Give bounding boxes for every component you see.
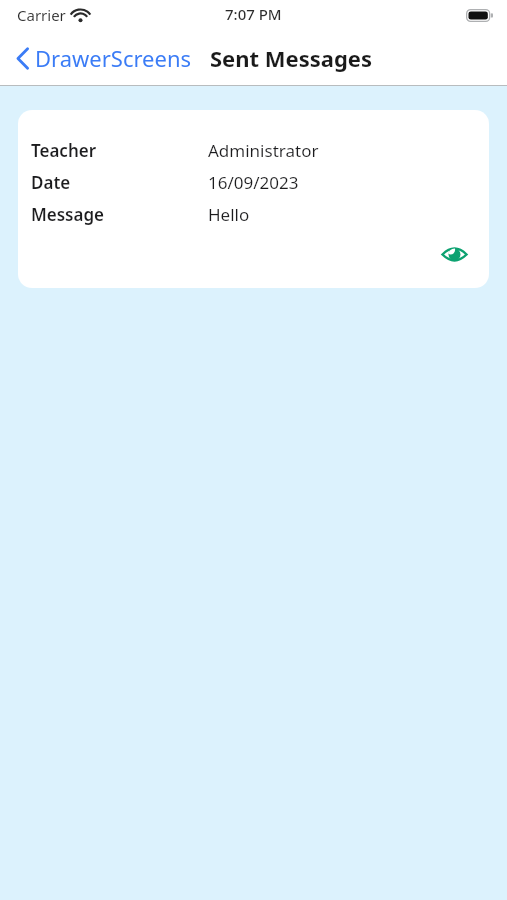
staticText: Carrier	[17, 5, 66, 25]
staticText: Date	[31, 171, 71, 194]
button[interactable]: Teacher	[18, 110, 489, 288]
staticText: 7:07 PM	[225, 4, 282, 24]
staticText: Hello	[208, 203, 250, 226]
staticText: 16/09/2023	[208, 171, 299, 194]
staticText: Message	[31, 203, 105, 226]
staticText: Teacher	[31, 139, 97, 162]
button[interactable]: DrawerScreens	[13, 37, 195, 79]
staticText: Sent Messages	[210, 43, 373, 73]
staticText: Administrator	[208, 139, 319, 162]
button[interactable]: View message	[436, 236, 472, 272]
staticText: DrawerScreens	[35, 43, 192, 73]
